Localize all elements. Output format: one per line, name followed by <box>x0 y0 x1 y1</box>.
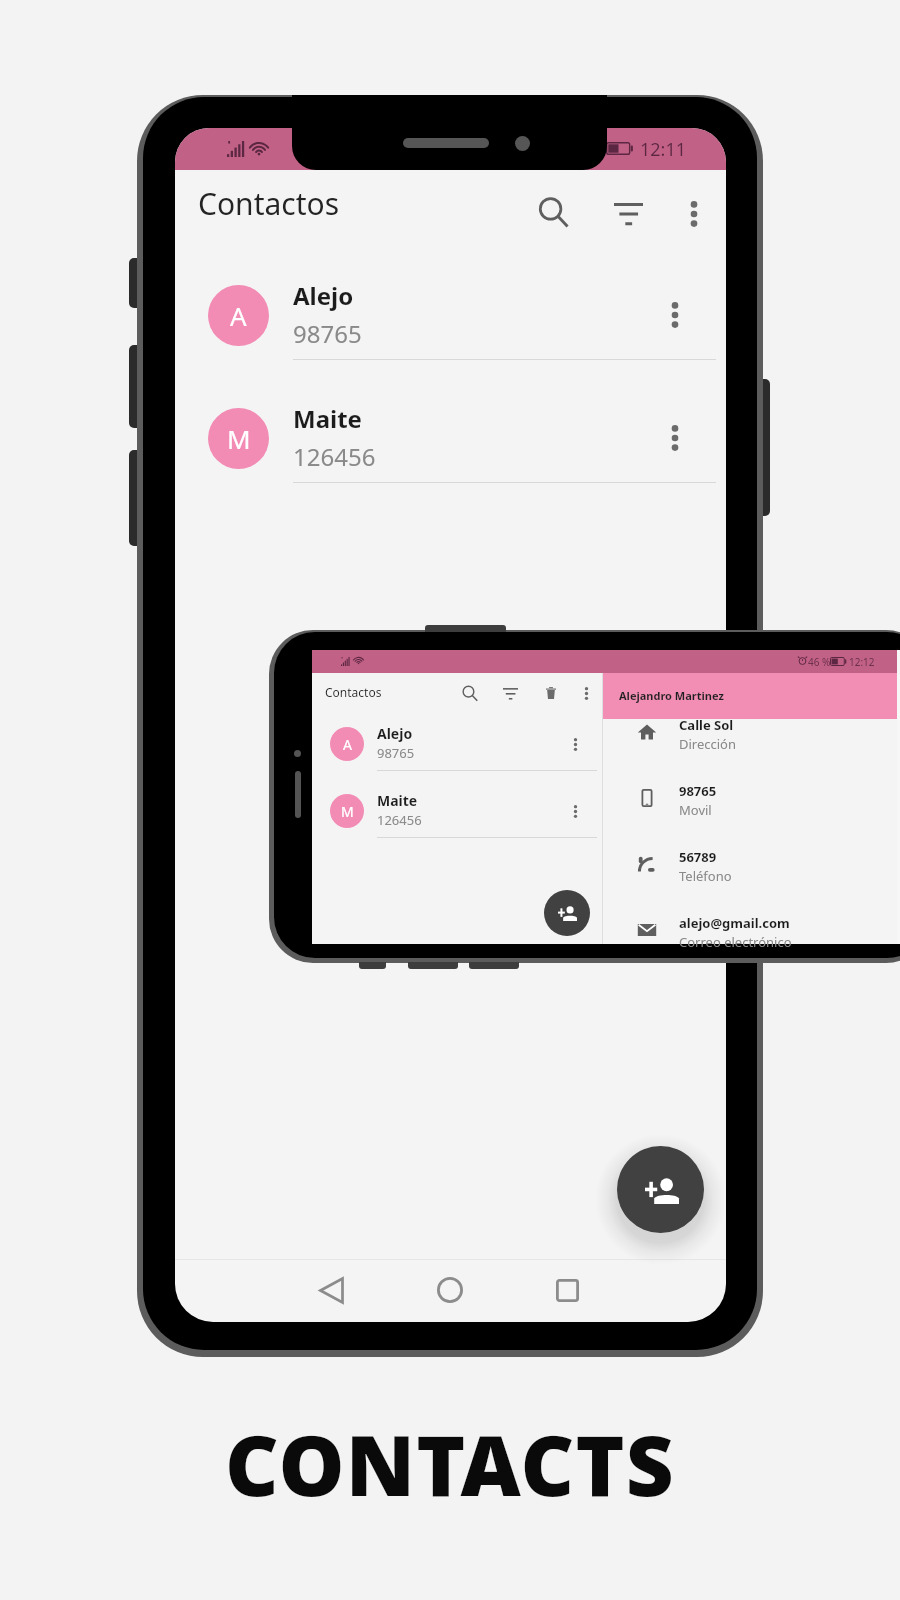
button[interactable]: Filter <box>601 186 656 241</box>
button[interactable]: Calle Sol <box>603 715 897 781</box>
button[interactable]: Add contact <box>544 890 590 936</box>
staticText: Alejo <box>377 724 413 743</box>
staticText: Dirección <box>679 735 737 753</box>
staticText: Maite <box>377 791 418 810</box>
staticText: Correo electrónico <box>679 933 792 951</box>
button[interactable]: More options <box>572 679 600 707</box>
button[interactable]: M <box>175 360 726 468</box>
button[interactable]: Contact options <box>554 771 602 831</box>
button[interactable]: Contact options <box>631 360 726 468</box>
staticText: 12:12 <box>849 655 875 669</box>
button[interactable]: M <box>312 771 602 831</box>
staticText: CONTACTS <box>225 1407 675 1520</box>
button[interactable]: Add contact <box>617 1146 704 1233</box>
staticText: Contactos <box>198 183 340 224</box>
button[interactable]: More options <box>666 186 721 241</box>
button[interactable]: Contact options <box>631 237 726 345</box>
staticText: Alejandro Martinez <box>619 688 724 703</box>
button[interactable]: Back <box>303 1262 359 1318</box>
button[interactable]: 56789 <box>603 847 897 913</box>
button[interactable]: 98765 <box>603 781 897 847</box>
staticText: 98765 <box>293 317 362 350</box>
staticText: Alejo <box>293 279 354 312</box>
button[interactable]: Filter <box>496 679 524 707</box>
staticText: Calle Sol <box>679 716 734 734</box>
staticText: Contactos <box>325 684 382 700</box>
staticText: 126456 <box>293 440 376 473</box>
staticText: 46 % <box>808 655 831 669</box>
button[interactable]: Home <box>422 1262 478 1318</box>
staticText: A <box>230 298 247 333</box>
staticText: Movil <box>679 801 712 819</box>
button[interactable]: Search <box>456 679 484 707</box>
staticText: M <box>341 802 354 821</box>
button[interactable]: Alejandro Martinez <box>603 673 897 719</box>
staticText: 98765 <box>377 744 415 762</box>
button[interactable]: Contact options <box>554 704 602 764</box>
staticText: 126456 <box>377 811 422 829</box>
staticText: Teléfono <box>679 867 732 885</box>
button[interactable]: Search <box>527 185 582 240</box>
button[interactable]: A <box>175 237 726 345</box>
button[interactable]: A <box>312 704 602 764</box>
staticText: 12:11 <box>640 137 687 162</box>
button[interactable]: alejo@gmail.com <box>603 913 897 979</box>
staticText: 56789 <box>679 848 717 866</box>
button[interactable]: Recents <box>539 1262 595 1318</box>
staticText: 98765 <box>679 782 717 800</box>
staticText: alejo@gmail.com <box>679 914 790 932</box>
staticText: A <box>343 735 352 754</box>
staticText: Maite <box>293 402 362 435</box>
button[interactable]: Delete <box>537 679 565 707</box>
staticText: M <box>227 421 251 456</box>
